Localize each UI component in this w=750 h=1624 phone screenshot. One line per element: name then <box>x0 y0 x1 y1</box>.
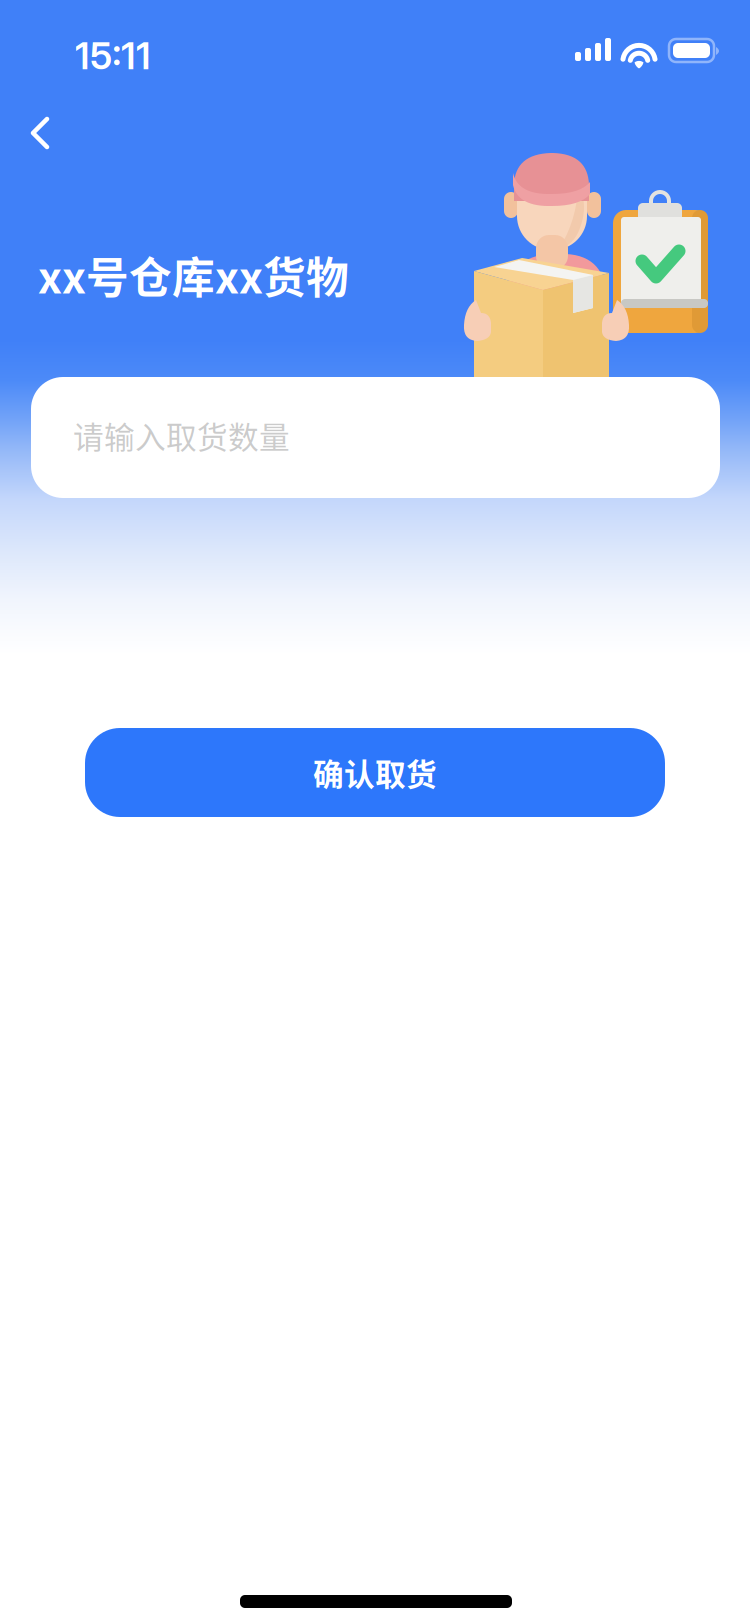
staticText: 确认取货 <box>313 750 437 795</box>
staticText: 15:11 <box>75 33 151 78</box>
button[interactable]: 请输入取货数量 <box>31 377 720 498</box>
button[interactable]: 确认取货 <box>85 728 665 817</box>
staticText: 请输入取货数量 <box>73 413 290 458</box>
button[interactable]: Back <box>4 101 80 165</box>
staticText: xx号仓库xx货物 <box>38 244 349 306</box>
